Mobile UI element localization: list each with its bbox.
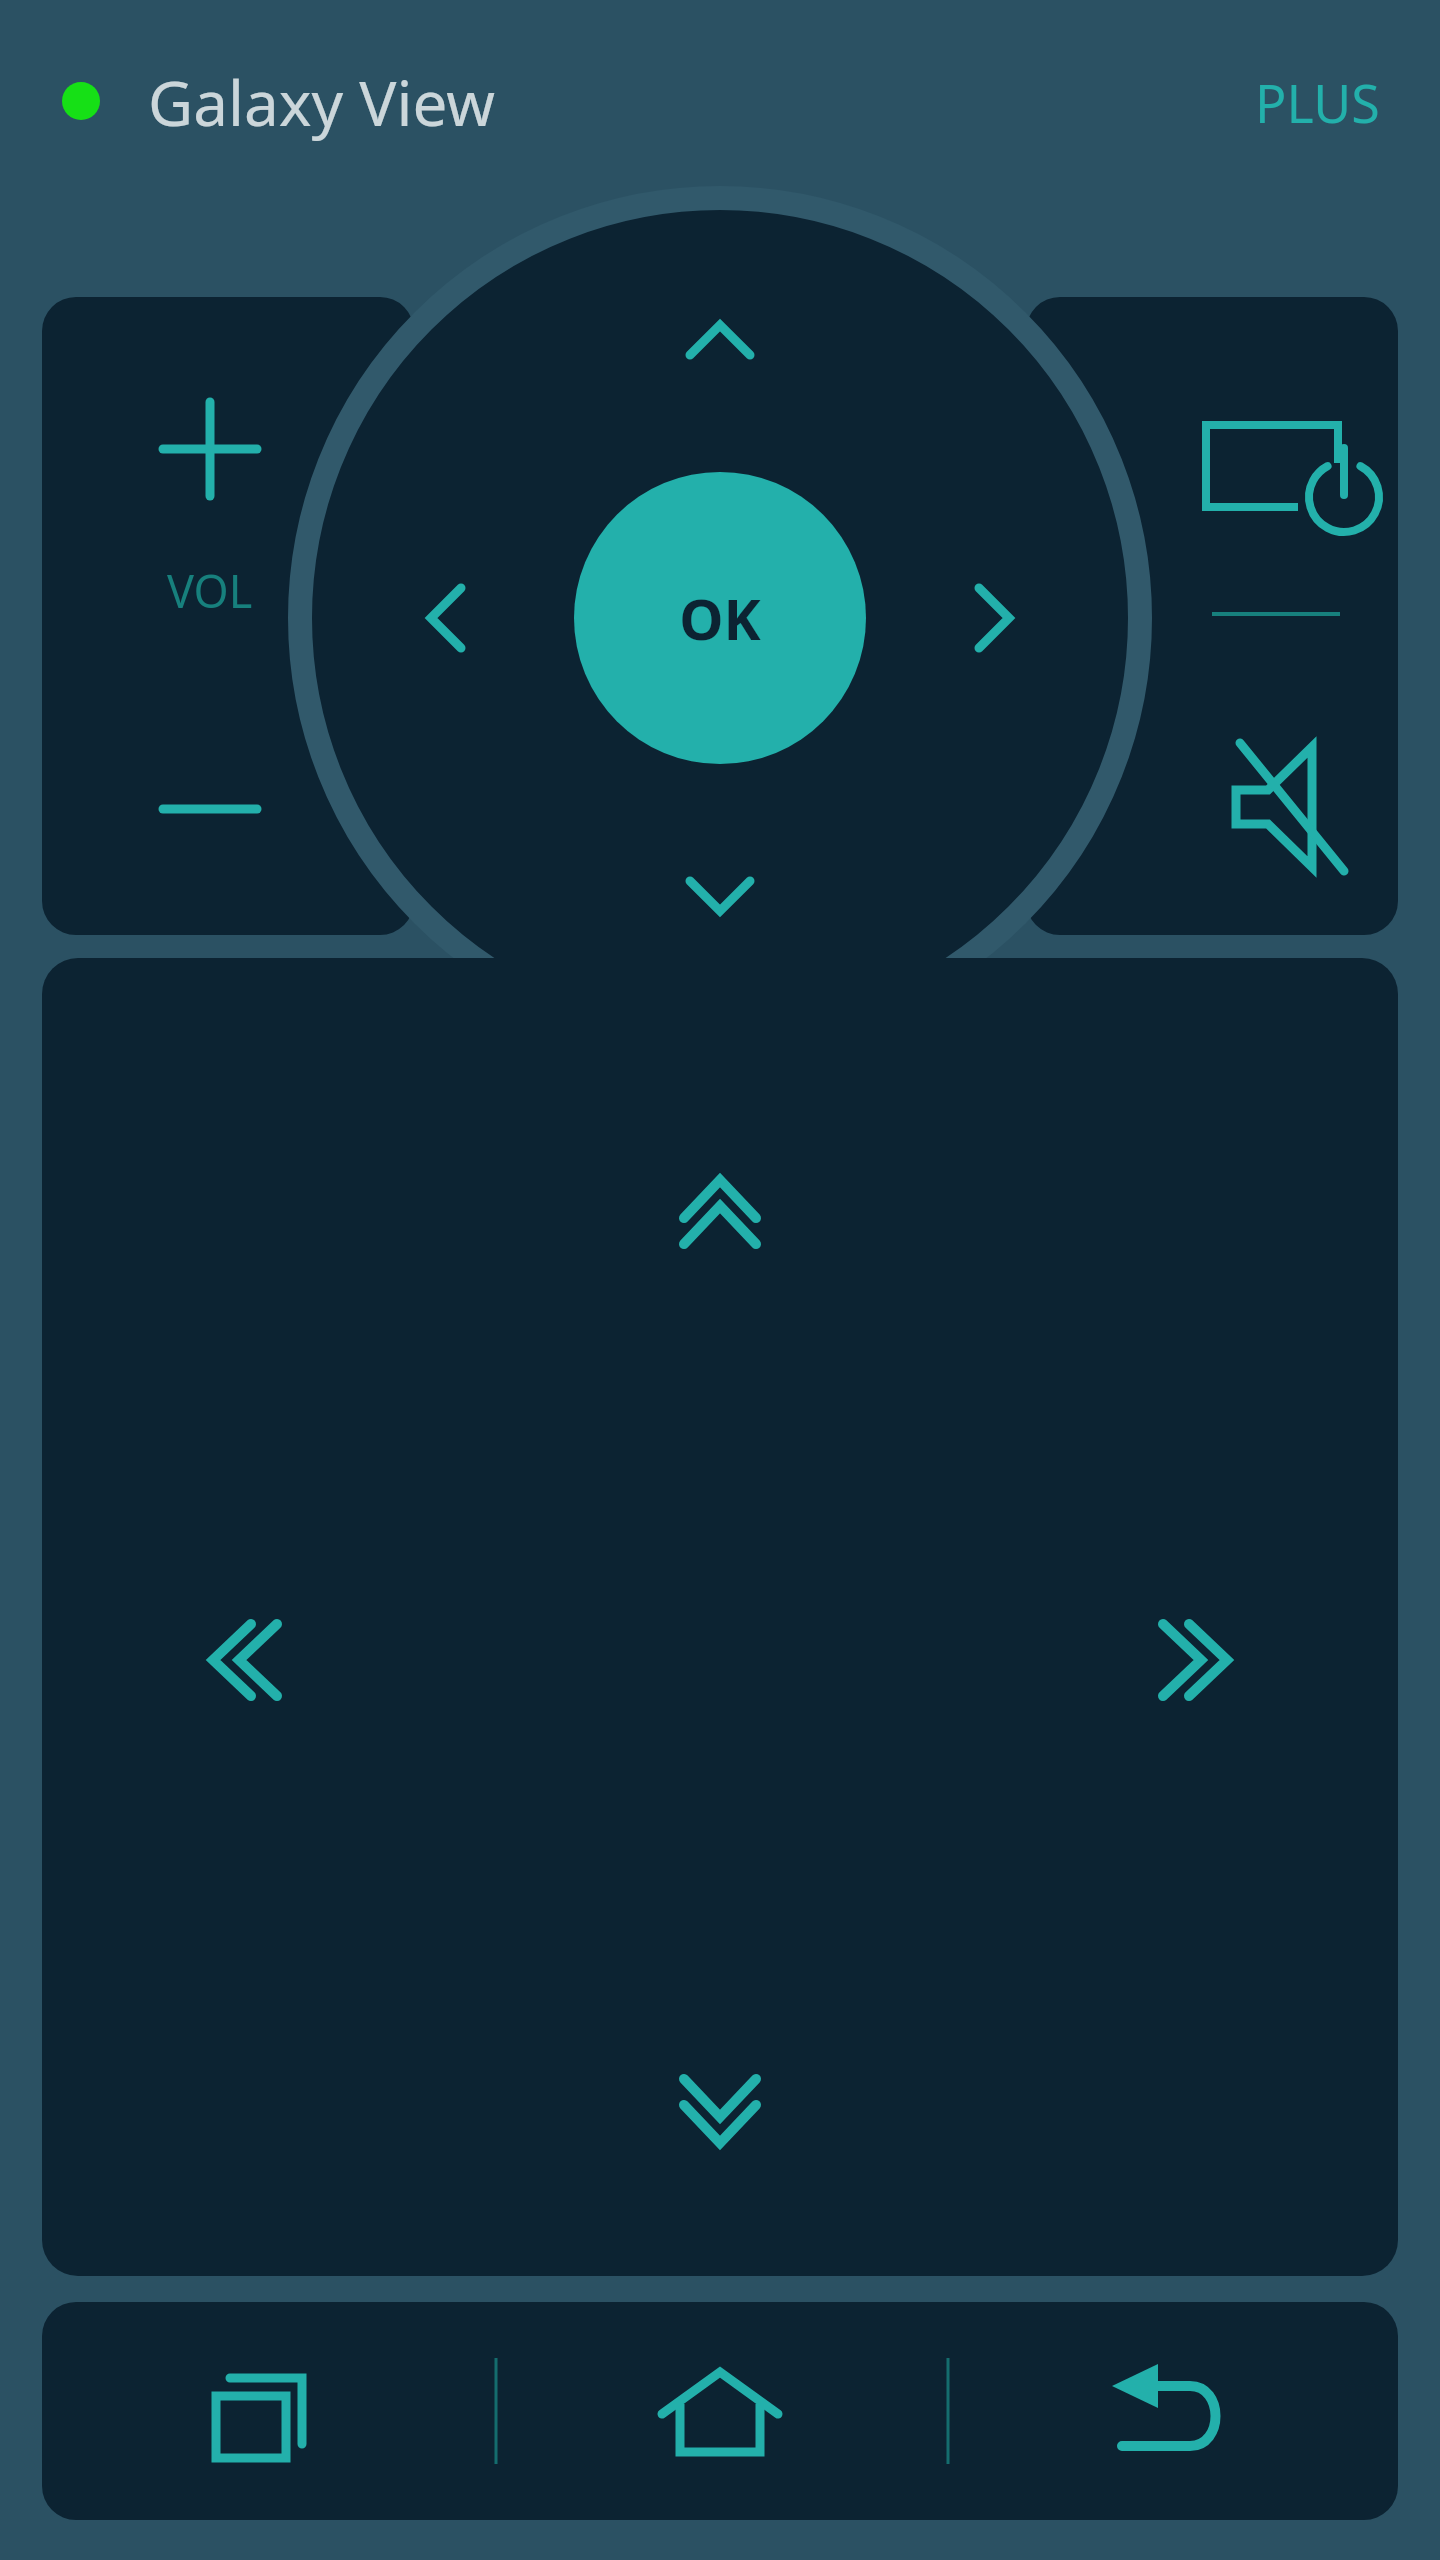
button[interactable]: Left [300, 508, 490, 728]
button[interactable]: OK [574, 472, 866, 764]
button[interactable]: Power [1026, 297, 1398, 587]
staticText: OK [679, 580, 761, 656]
button[interactable]: Page right [1115, 1580, 1275, 1740]
button[interactable]: Up [610, 198, 830, 388]
button[interactable]: Mute [1026, 677, 1398, 935]
staticText: PLUS [1255, 67, 1380, 138]
button[interactable]: Down [610, 848, 830, 1038]
staticText: VOL [167, 560, 253, 621]
button[interactable]: Volume up [42, 297, 414, 512]
button[interactable]: Page up [640, 1142, 800, 1282]
button[interactable]: Back [946, 2302, 1398, 2520]
button[interactable]: Home [494, 2302, 946, 2520]
button[interactable]: Volume down [42, 697, 414, 935]
button[interactable]: Page left [165, 1580, 325, 1740]
button[interactable]: Recents [42, 2302, 494, 2520]
staticText: Galaxy View [148, 60, 495, 144]
button[interactable]: Page down [640, 2041, 800, 2181]
button[interactable]: Galaxy View [148, 58, 708, 146]
button[interactable]: Right [950, 508, 1140, 728]
button[interactable]: Touchpad [42, 958, 1398, 2276]
button[interactable]: PLUS [1160, 58, 1380, 146]
